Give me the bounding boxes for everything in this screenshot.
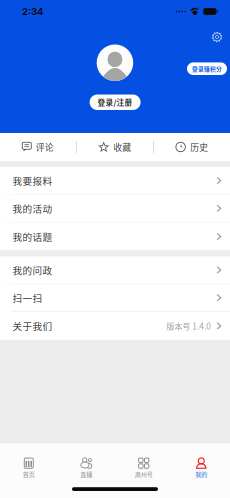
button[interactable]: 登录/注册: [90, 94, 141, 110]
staticText: 2:34: [22, 6, 43, 17]
staticText: 收藏: [113, 141, 131, 153]
button[interactable]: 登录赚积分: [187, 62, 227, 75]
staticText: 我要报料: [12, 174, 52, 187]
staticText: 登录赚积分: [192, 64, 222, 73]
staticText: 我的活动: [12, 201, 52, 215]
button[interactable]: 我的: [172, 443, 230, 480]
button[interactable]: 肃州号: [115, 443, 172, 480]
staticText: 扫一扫: [12, 291, 42, 305]
button[interactable]: 我的活动: [0, 195, 230, 223]
button[interactable]: 收藏: [77, 133, 153, 161]
button[interactable]: 首页: [0, 443, 57, 480]
button[interactable]: 历史: [154, 133, 230, 161]
staticText: 评论: [36, 141, 54, 153]
staticText: 我的话题: [12, 229, 52, 243]
button[interactable]: 直播: [57, 443, 115, 480]
button[interactable]: 评论: [0, 133, 76, 161]
staticText: 关于我们: [12, 319, 52, 333]
staticText: 版本号 1.4.0: [166, 320, 211, 332]
staticText: 我的: [195, 470, 207, 479]
staticText: 历史: [190, 141, 208, 153]
button[interactable]: 扫一扫: [0, 284, 230, 312]
staticText: 首页: [23, 470, 35, 479]
button[interactable]: 关于我们: [0, 312, 230, 340]
staticText: 我的问政: [12, 263, 52, 277]
staticText: 肃州号: [135, 470, 153, 479]
button[interactable]: 设置: [206, 26, 228, 48]
staticText: 直播: [80, 470, 92, 479]
button[interactable]: 我的问政: [0, 256, 230, 284]
button[interactable]: 我的话题: [0, 223, 230, 250]
button[interactable]: 我要报料: [0, 167, 230, 195]
staticText: 登录/注册: [98, 97, 133, 108]
